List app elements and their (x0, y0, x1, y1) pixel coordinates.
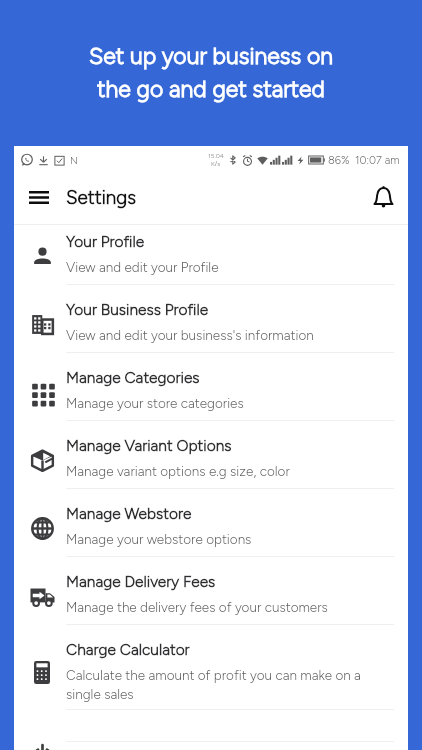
staticText: the go and get started (97, 75, 325, 103)
staticText: 86% (328, 154, 350, 167)
button[interactable]: Your Business Profile (14, 285, 408, 353)
staticText: Manage your webstore options (66, 531, 252, 547)
staticText: Charge Calculator (66, 640, 190, 659)
staticText: 15.04 (208, 152, 224, 160)
staticText: Set up your business on (89, 42, 333, 70)
staticText: Manage Delivery Fees (66, 572, 216, 591)
staticText: Manage Variant Options (66, 436, 232, 455)
staticText: View and edit your Profile (66, 259, 219, 275)
button[interactable]: Manage Categories (14, 353, 408, 421)
staticText: Settings (66, 186, 136, 209)
staticText: Calculate the amount of profit you can m… (66, 667, 394, 702)
staticText: Manage your store categories (66, 395, 244, 411)
button[interactable]: Manage Delivery Fees (14, 557, 408, 625)
staticText: Manage Categories (66, 368, 200, 387)
staticText: Your Business Profile (66, 300, 209, 319)
staticText: Manage variant options e.g size, color (66, 463, 290, 479)
button[interactable]: Your Profile (14, 225, 408, 285)
staticText: View and edit your business's informatio… (66, 327, 314, 343)
button[interactable]: Notifications (367, 181, 399, 213)
staticText: Your Profile (66, 232, 145, 251)
staticText: 10:07 am (355, 154, 400, 167)
staticText: N (70, 154, 78, 166)
button[interactable]: Open navigation menu (23, 181, 55, 213)
staticText: Manage the delivery fees of your custome… (66, 599, 328, 615)
button[interactable]: Charge Calculator (14, 625, 408, 710)
button[interactable]: Manage Webstore (14, 489, 408, 557)
staticText: Manage Webstore (66, 504, 192, 523)
staticText: K/s (211, 160, 221, 168)
button[interactable]: Manage Variant Options (14, 421, 408, 489)
